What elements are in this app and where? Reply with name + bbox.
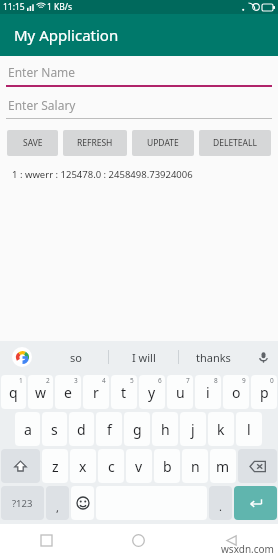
- staticText: r: [93, 383, 99, 402]
- staticText: 2: [46, 376, 50, 385]
- button[interactable]: k: [208, 412, 234, 446]
- button[interactable]: Shift: [1, 449, 40, 483]
- staticText: i: [206, 383, 210, 402]
- button[interactable]: s: [42, 412, 67, 446]
- button[interactable]: g: [124, 412, 150, 446]
- staticText: 1 : wwerr : 125478.0 : 2458498.73924006: [12, 168, 193, 181]
- staticText: v: [135, 457, 143, 476]
- staticText: UPDATE: [147, 137, 179, 149]
- button[interactable]: Google: [0, 341, 44, 373]
- button[interactable]: j: [180, 412, 206, 446]
- staticText: DELETEALL: [213, 137, 257, 149]
- button[interactable]: so: [44, 341, 108, 373]
- button[interactable]: r: [83, 375, 109, 409]
- staticText: .: [219, 499, 222, 514]
- staticText: j: [191, 420, 195, 439]
- staticText: thanks: [196, 350, 231, 365]
- staticText: 0: [270, 376, 274, 385]
- button[interactable]: ?123: [1, 486, 44, 520]
- button[interactable]: Emoji: [71, 486, 94, 520]
- button[interactable]: p: [251, 375, 277, 409]
- button[interactable]: d: [69, 412, 94, 446]
- button[interactable]: n: [182, 449, 208, 483]
- staticText: Enter Name: [8, 64, 76, 80]
- staticText: 1: [19, 376, 23, 385]
- staticText: so: [70, 350, 82, 365]
- button[interactable]: Back: [185, 524, 278, 556]
- button[interactable]: b: [154, 449, 180, 483]
- button[interactable]: c: [98, 449, 124, 483]
- button[interactable]: I will: [109, 341, 178, 373]
- staticText: 8: [214, 376, 218, 385]
- button[interactable]: a: [15, 412, 40, 446]
- staticText: I will: [132, 350, 156, 365]
- button[interactable]: x: [70, 449, 96, 483]
- button[interactable]: UPDATE: [132, 130, 194, 156]
- staticText: 11:15: [3, 1, 25, 13]
- staticText: y: [148, 383, 156, 402]
- button[interactable]: .: [209, 486, 232, 520]
- button[interactable]: m: [210, 449, 236, 483]
- staticText: o: [232, 383, 241, 402]
- staticText: 5: [130, 376, 134, 385]
- staticText: q: [9, 383, 18, 402]
- staticText: n: [191, 457, 200, 476]
- button[interactable]: REFRESH: [63, 130, 127, 156]
- staticText: 4: [102, 376, 106, 385]
- staticText: SAVE: [23, 137, 43, 149]
- button[interactable]: Backspace: [238, 449, 277, 483]
- staticText: e: [64, 383, 72, 402]
- button[interactable]: Home: [92, 524, 185, 556]
- staticText: m: [216, 457, 230, 476]
- button[interactable]: y: [139, 375, 165, 409]
- staticText: Enter Salary: [8, 97, 76, 113]
- staticText: 1 KB/s: [47, 1, 73, 13]
- staticText: p: [260, 383, 269, 402]
- button[interactable]: h: [152, 412, 178, 446]
- button[interactable]: thanks: [179, 341, 248, 373]
- staticText: c: [108, 457, 115, 476]
- button[interactable]: z: [42, 449, 68, 483]
- staticText: 3: [74, 376, 78, 385]
- staticText: b: [163, 457, 172, 476]
- staticText: My Application: [14, 25, 119, 45]
- staticText: w: [35, 383, 47, 402]
- staticText: 6: [158, 376, 162, 385]
- staticText: x: [79, 457, 87, 476]
- button[interactable]: e: [55, 375, 81, 409]
- staticText: 9: [242, 376, 246, 385]
- staticText: g: [133, 420, 142, 439]
- button[interactable]: Voice input: [248, 341, 278, 373]
- staticText: u: [176, 383, 185, 402]
- button[interactable]: l: [236, 412, 262, 446]
- staticText: t: [121, 383, 127, 402]
- button[interactable]: q: [1, 375, 26, 409]
- staticText: l: [247, 420, 251, 439]
- staticText: ,: [56, 500, 59, 515]
- staticText: h: [161, 420, 170, 439]
- button[interactable]: w: [28, 375, 53, 409]
- staticText: f: [107, 420, 112, 439]
- staticText: z: [52, 457, 59, 476]
- staticText: d: [77, 420, 86, 439]
- button[interactable]: Enter: [234, 486, 277, 520]
- button[interactable]: SAVE: [7, 130, 58, 156]
- staticText: 7: [186, 376, 190, 385]
- staticText: ?123: [12, 497, 33, 510]
- staticText: s: [51, 420, 58, 439]
- staticText: REFRESH: [77, 137, 113, 149]
- button[interactable]: ,: [46, 486, 69, 520]
- button[interactable]: v: [126, 449, 152, 483]
- button[interactable]: Recents: [0, 524, 92, 556]
- button[interactable]: o: [223, 375, 249, 409]
- button[interactable]: u: [167, 375, 193, 409]
- button[interactable]: i: [195, 375, 221, 409]
- button[interactable]: t: [111, 375, 137, 409]
- button[interactable]: f: [96, 412, 122, 446]
- staticText: wsxdn.com: [221, 542, 274, 556]
- staticText: k: [217, 420, 225, 439]
- button[interactable]: DELETEALL: [199, 130, 271, 156]
- staticText: a: [24, 420, 32, 439]
